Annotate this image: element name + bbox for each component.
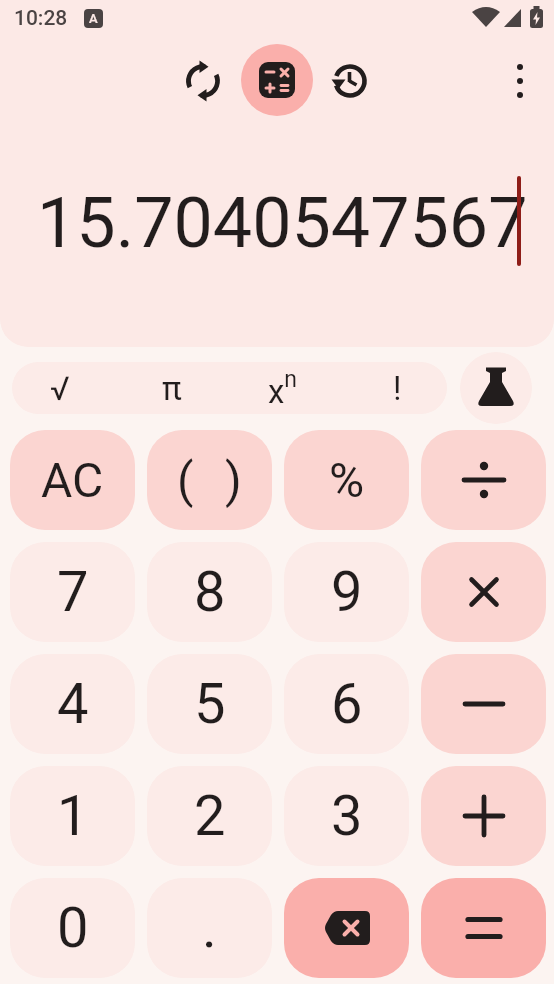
staticText: 0	[57, 895, 89, 961]
button[interactable]: 1	[10, 766, 135, 866]
button[interactable]: xn	[245, 362, 321, 414]
staticText: !	[393, 369, 402, 408]
staticText: %	[329, 452, 365, 508]
button[interactable]: 6	[284, 654, 409, 754]
staticText: 2	[194, 783, 226, 849]
staticText: 10:28	[14, 6, 68, 31]
button[interactable]: 9	[284, 542, 409, 642]
staticText: 7	[57, 559, 89, 625]
button[interactable]: 4	[10, 654, 135, 754]
staticText: 8	[194, 559, 226, 625]
staticText: 6	[331, 671, 363, 737]
staticText: 5	[194, 671, 226, 737]
staticText: (	[177, 452, 194, 508]
staticText: A	[89, 11, 98, 26]
staticText: 15.7040547567	[37, 182, 528, 264]
staticText: π	[162, 369, 182, 408]
staticText: 3	[331, 783, 363, 849]
button[interactable]: 8	[147, 542, 272, 642]
button[interactable]: 2	[147, 766, 272, 866]
button[interactable]	[460, 352, 532, 424]
button[interactable]	[241, 44, 313, 116]
button[interactable]: 7	[10, 542, 135, 642]
staticText: 9	[331, 559, 363, 625]
staticText: √	[50, 369, 70, 408]
button[interactable]: 5	[147, 654, 272, 754]
staticText: 1	[57, 783, 89, 849]
button[interactable]: (	[147, 430, 272, 530]
staticText: .	[202, 895, 217, 961]
staticText: AC	[41, 452, 104, 508]
button[interactable]	[500, 61, 540, 101]
button[interactable]: .	[147, 878, 272, 978]
button[interactable]	[421, 542, 546, 642]
button[interactable]	[326, 57, 374, 105]
button[interactable]: AC	[10, 430, 135, 530]
button[interactable]	[421, 654, 546, 754]
button[interactable]: %	[284, 430, 409, 530]
staticText: xn	[268, 366, 298, 411]
button[interactable]: π	[136, 362, 208, 414]
button[interactable]	[179, 57, 227, 105]
button[interactable]: 3	[284, 766, 409, 866]
button[interactable]: !	[361, 362, 433, 414]
button[interactable]	[421, 766, 546, 866]
staticText: )	[225, 452, 242, 508]
staticText: 4	[57, 671, 89, 737]
button[interactable]	[284, 878, 409, 978]
button[interactable]: 0	[10, 878, 135, 978]
button[interactable]	[421, 878, 546, 978]
button[interactable]: √	[24, 362, 96, 414]
button[interactable]	[421, 430, 546, 530]
